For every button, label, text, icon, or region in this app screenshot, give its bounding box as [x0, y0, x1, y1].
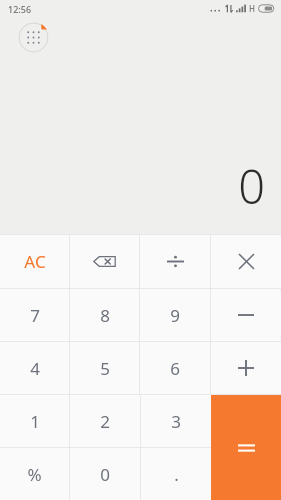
button[interactable]: Multiply	[211, 235, 281, 288]
staticText: 1	[30, 410, 40, 433]
button[interactable]: Open scientific keypad	[18, 22, 49, 53]
button[interactable]: 7	[0, 289, 69, 341]
button[interactable]: 3	[141, 395, 211, 447]
staticText: 3	[171, 410, 181, 433]
button[interactable]: 1	[0, 395, 69, 447]
button[interactable]: 4	[0, 342, 69, 394]
staticText: 2	[100, 410, 110, 433]
staticText: 8	[100, 304, 110, 327]
button[interactable]: AC	[0, 235, 69, 288]
staticText: 0	[100, 463, 110, 486]
button[interactable]: Equals	[211, 395, 281, 500]
staticText: 7	[30, 304, 40, 327]
staticText: 9	[170, 304, 180, 327]
staticText: 0	[238, 154, 265, 218]
staticText: %	[27, 463, 42, 486]
button[interactable]: Divide	[140, 235, 210, 288]
button[interactable]: 2	[70, 395, 140, 447]
button[interactable]: %	[0, 448, 69, 500]
staticText: 5	[100, 357, 110, 380]
staticText: .	[174, 463, 179, 486]
button[interactable]: 0	[70, 448, 140, 500]
button[interactable]: Plus	[211, 342, 281, 394]
staticText: H	[249, 3, 255, 14]
button[interactable]: Backspace	[70, 235, 139, 288]
staticText: 6	[170, 357, 180, 380]
button[interactable]: .	[141, 448, 211, 500]
button[interactable]: Minus	[211, 289, 281, 341]
staticText: AC	[24, 250, 46, 273]
button[interactable]: 5	[70, 342, 139, 394]
button[interactable]: 9	[140, 289, 210, 341]
button[interactable]: 8	[70, 289, 139, 341]
button[interactable]: 6	[140, 342, 210, 394]
staticText: 12:56	[8, 3, 32, 15]
staticText: 4	[30, 357, 40, 380]
